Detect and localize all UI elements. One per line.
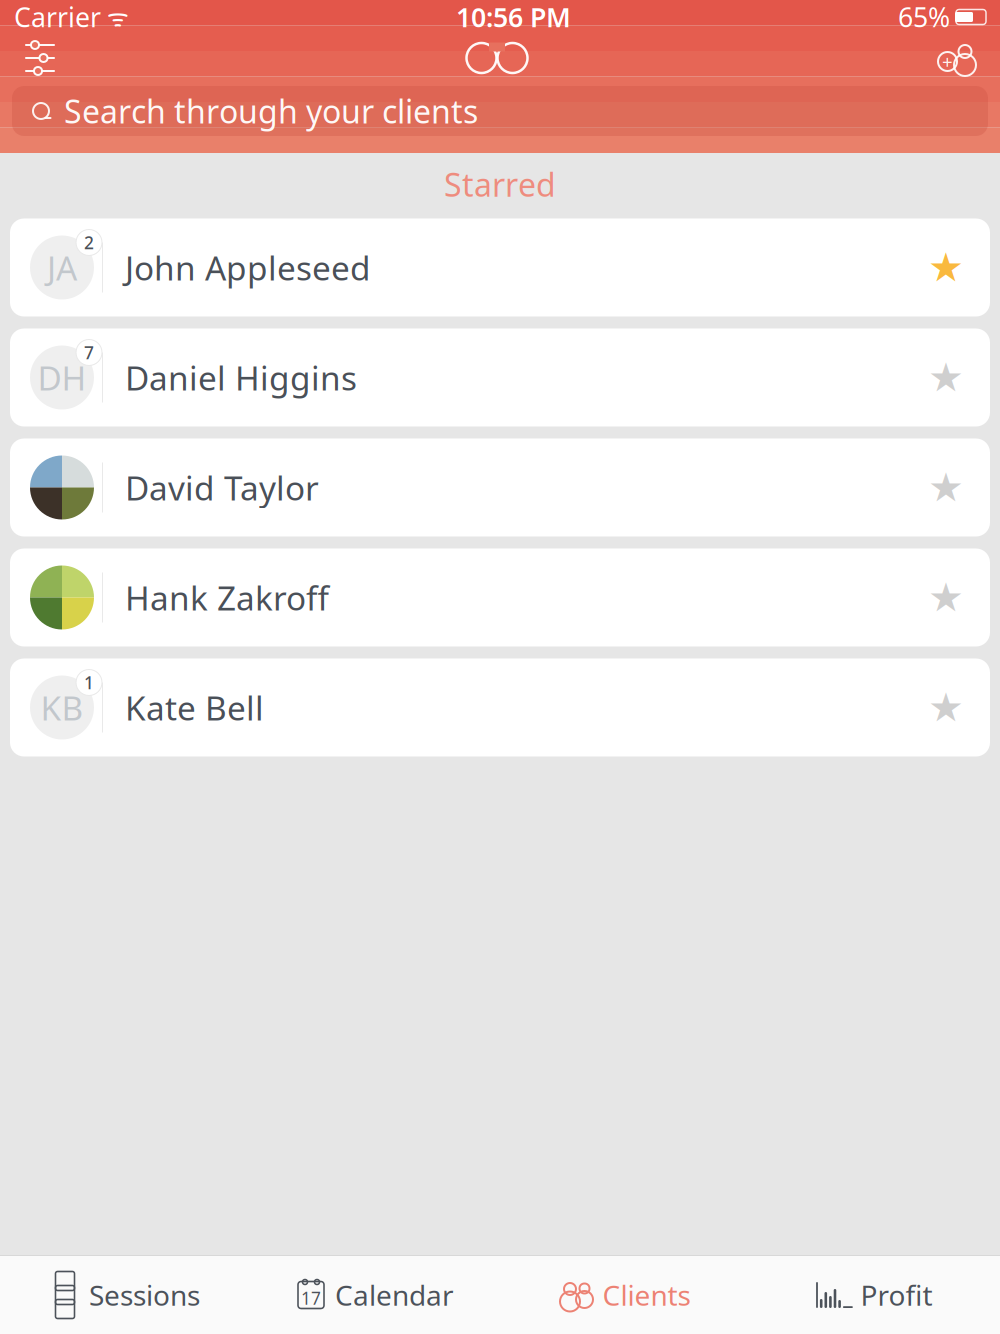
staticText: 2	[84, 231, 94, 254]
staticText: Search through your clients	[64, 90, 478, 132]
button[interactable]: Sessions	[0, 1256, 250, 1334]
button[interactable]: Profit	[750, 1256, 1000, 1334]
staticText: 1	[84, 671, 94, 694]
staticText: John Appleseed	[125, 245, 371, 290]
staticText: 10:56 PM	[456, 0, 571, 35]
staticText: 17	[301, 1286, 321, 1309]
staticText: JA	[47, 245, 77, 290]
staticText: David Taylor	[125, 465, 319, 510]
staticText: ★	[928, 245, 964, 290]
button[interactable]: DH	[10, 328, 990, 426]
button[interactable]: Add client	[930, 35, 984, 81]
staticText: 65%	[898, 0, 950, 35]
button[interactable]: JA	[10, 218, 990, 316]
staticText: Hank Zakroff	[125, 575, 329, 620]
button[interactable]: KB	[10, 658, 990, 756]
staticText: Daniel Higgins	[125, 355, 357, 400]
staticText: ᯤ	[101, 1, 129, 33]
staticText: +	[942, 49, 953, 74]
staticText: Profit	[860, 1276, 932, 1314]
button[interactable]: 17	[250, 1256, 500, 1334]
button[interactable]: Hank Zakroff	[10, 548, 990, 646]
staticText: Starred	[444, 163, 556, 205]
staticText: DH	[37, 355, 86, 400]
staticText: Kate Bell	[125, 685, 264, 730]
staticText: ★	[928, 685, 964, 730]
button[interactable]: Clients	[500, 1256, 750, 1334]
button[interactable]: David Taylor	[10, 438, 990, 536]
staticText: KB	[40, 685, 83, 730]
staticText: ★	[928, 355, 964, 400]
staticText: ★	[928, 575, 964, 620]
staticText: Sessions	[89, 1276, 200, 1314]
staticText: Carrier	[14, 0, 101, 35]
staticText: Clients	[602, 1276, 690, 1314]
button[interactable]: Search through your clients	[12, 86, 988, 136]
staticText: Calendar	[335, 1276, 454, 1314]
staticText: 7	[84, 341, 94, 364]
staticText: ★	[928, 465, 964, 510]
button[interactable]: Filters	[16, 35, 64, 81]
